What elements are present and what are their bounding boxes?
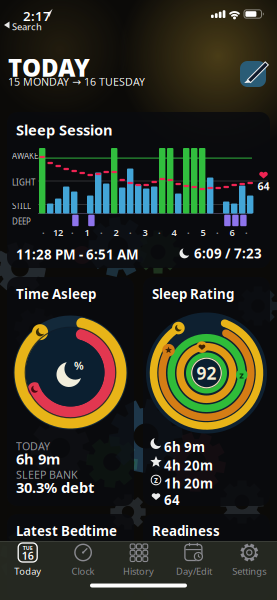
staticText: 30.3% debt [16, 477, 94, 497]
button[interactable]: Sleep Session [7, 112, 270, 268]
staticText: 4h 20m [164, 456, 213, 474]
staticText: 15 MONDAY → 16 TUESDAY [8, 74, 145, 89]
staticText: 92 [196, 361, 216, 384]
staticText: · [216, 226, 219, 239]
staticText: 1h 20m [164, 474, 213, 492]
staticText: 4 [171, 226, 176, 239]
staticText: · [187, 226, 190, 239]
staticText: AWAKE [12, 150, 38, 161]
staticText: · [245, 226, 248, 239]
staticText: 11:28 PM - 6:51 AM [16, 245, 139, 263]
staticText: · [129, 226, 132, 239]
button[interactable]: History [111, 542, 166, 577]
staticText: 2:17 [23, 7, 51, 25]
staticText: Sleep Session [16, 120, 113, 139]
staticText: 5 [200, 226, 205, 239]
staticText: TUE [23, 544, 33, 552]
staticText: 3 [142, 226, 147, 239]
staticText: 6 [229, 226, 234, 239]
staticText: · [42, 226, 45, 239]
button[interactable] [240, 57, 270, 89]
staticText: 64 [257, 179, 269, 193]
staticText: Sleep Rating [152, 285, 234, 303]
button[interactable]: Settings [222, 542, 277, 577]
staticText: Today [14, 565, 41, 577]
button[interactable]: Clock [55, 542, 111, 577]
button[interactable]: Sleep Rating [143, 277, 270, 506]
staticText: % [74, 358, 84, 373]
staticText: Time Asleep [16, 285, 96, 303]
staticText: 6:09 / 7:23 [194, 244, 262, 262]
button[interactable]: Readiness [143, 514, 270, 600]
staticText: SLEEP BANK [16, 467, 78, 482]
staticText: 64 [164, 491, 180, 509]
staticText: Day/Edit [176, 565, 212, 577]
staticText: · [158, 226, 161, 239]
staticText: · [100, 226, 103, 239]
staticText: z [239, 369, 244, 381]
staticText: 6h 9m [16, 449, 60, 468]
button[interactable]: Latest Bedtime [7, 514, 134, 600]
staticText: Settings [232, 565, 266, 577]
button[interactable]: TUE [0, 542, 55, 577]
staticText: TODAY [8, 51, 90, 83]
staticText: 6h 9m [164, 438, 205, 456]
staticText: z [154, 475, 158, 485]
button[interactable]: Time Asleep [7, 277, 134, 506]
staticText: 1 [84, 226, 89, 239]
staticText: 16 [22, 548, 34, 563]
staticText: LIGHT [12, 177, 35, 188]
staticText: Clock [72, 565, 95, 577]
staticText: TODAY [16, 439, 50, 453]
staticText: DEEP [12, 216, 31, 227]
staticText: 2 [113, 226, 118, 239]
staticText: STILL [12, 200, 31, 211]
staticText: History [123, 565, 154, 577]
button[interactable]: Day/Edit [166, 542, 222, 577]
staticText: Latest Bedtime [16, 522, 117, 540]
staticText: · [71, 226, 74, 239]
staticText: 12 [53, 226, 63, 239]
staticText: Readiness [152, 522, 220, 540]
staticText: Search [12, 20, 42, 33]
